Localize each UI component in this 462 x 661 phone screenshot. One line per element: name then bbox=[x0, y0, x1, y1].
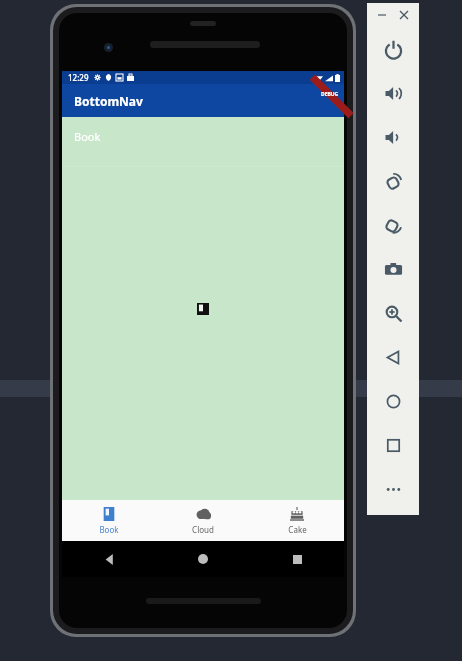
button[interactable]: Close bbox=[396, 7, 412, 23]
staticText: 12:29 bbox=[68, 72, 89, 83]
button[interactable]: Power bbox=[367, 27, 419, 71]
staticText: DEBUG bbox=[321, 91, 339, 98]
button[interactable]: Recent apps bbox=[250, 541, 344, 577]
button[interactable]: Rotate right bbox=[367, 203, 419, 247]
button[interactable]: Take screenshot bbox=[367, 247, 419, 291]
button[interactable]: Back bbox=[367, 335, 419, 379]
button[interactable]: Back bbox=[62, 541, 156, 577]
button[interactable]: Rotate left bbox=[367, 159, 419, 203]
button[interactable]: Book bbox=[62, 500, 156, 541]
button[interactable]: Volume up bbox=[367, 71, 419, 115]
staticText: Book bbox=[74, 129, 101, 144]
button[interactable]: Cake bbox=[250, 500, 344, 541]
button[interactable]: More bbox=[367, 467, 419, 511]
button[interactable]: Volume down bbox=[367, 115, 419, 159]
button[interactable]: Home bbox=[156, 541, 250, 577]
staticText: Book bbox=[99, 524, 119, 535]
button[interactable]: Zoom bbox=[367, 291, 419, 335]
button[interactable]: Overview bbox=[367, 423, 419, 467]
button[interactable]: Cloud bbox=[156, 500, 250, 541]
staticText: Cloud bbox=[192, 524, 214, 535]
staticText: Cake bbox=[288, 524, 307, 535]
button[interactable]: Home bbox=[367, 379, 419, 423]
staticText: BottomNav bbox=[74, 93, 143, 109]
button[interactable]: Minimize bbox=[374, 7, 390, 23]
